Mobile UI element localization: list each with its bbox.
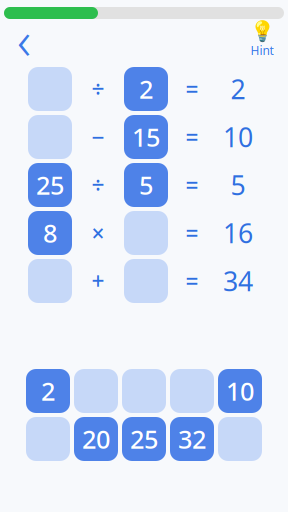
button[interactable]: 32: [170, 417, 214, 461]
staticText: −: [91, 122, 104, 152]
staticText: +: [91, 266, 104, 296]
button[interactable]: Empty slot: [28, 259, 72, 303]
button[interactable]: Empty slot: [124, 211, 168, 255]
staticText: ×: [91, 218, 104, 248]
staticText: 2: [139, 72, 153, 106]
button[interactable]: Empty slot: [170, 369, 214, 413]
button[interactable]: Empty slot: [124, 259, 168, 303]
staticText: 10: [223, 119, 253, 155]
staticText: 16: [223, 215, 253, 251]
staticText: 8: [43, 216, 57, 250]
staticText: 10: [226, 374, 254, 408]
staticText: 2: [230, 71, 245, 107]
staticText: =: [185, 122, 198, 152]
staticText: ÷: [91, 74, 104, 104]
button[interactable]: 25: [28, 163, 72, 207]
staticText: 25: [130, 422, 158, 456]
button[interactable]: 2: [124, 67, 168, 111]
button[interactable]: Empty slot: [26, 417, 70, 461]
button[interactable]: 20: [74, 417, 118, 461]
staticText: 25: [36, 168, 64, 202]
staticText: 20: [82, 422, 110, 456]
button[interactable]: Empty slot: [28, 67, 72, 111]
button[interactable]: 10: [218, 369, 262, 413]
staticText: 💡: [249, 20, 274, 42]
button[interactable]: Empty slot: [218, 417, 262, 461]
staticText: =: [185, 218, 198, 248]
staticText: 34: [223, 263, 253, 299]
staticText: 15: [132, 120, 160, 154]
button[interactable]: 2: [26, 369, 70, 413]
staticText: =: [185, 170, 198, 200]
staticText: 5: [139, 168, 153, 202]
button[interactable]: Empty slot: [122, 369, 166, 413]
staticText: =: [185, 266, 198, 296]
button[interactable]: Empty slot: [28, 115, 72, 159]
button[interactable]: Hint: [242, 22, 282, 56]
staticText: ‹: [17, 4, 31, 74]
button[interactable]: 15: [124, 115, 168, 159]
staticText: =: [185, 74, 198, 104]
staticText: 32: [178, 422, 206, 456]
staticText: 2: [41, 374, 55, 408]
staticText: Hint: [250, 42, 273, 58]
button[interactable]: Back: [6, 22, 42, 56]
staticText: ÷: [91, 170, 104, 200]
button[interactable]: 25: [122, 417, 166, 461]
staticText: 5: [230, 167, 245, 203]
button[interactable]: 8: [28, 211, 72, 255]
button[interactable]: 5: [124, 163, 168, 207]
button[interactable]: Empty slot: [74, 369, 118, 413]
